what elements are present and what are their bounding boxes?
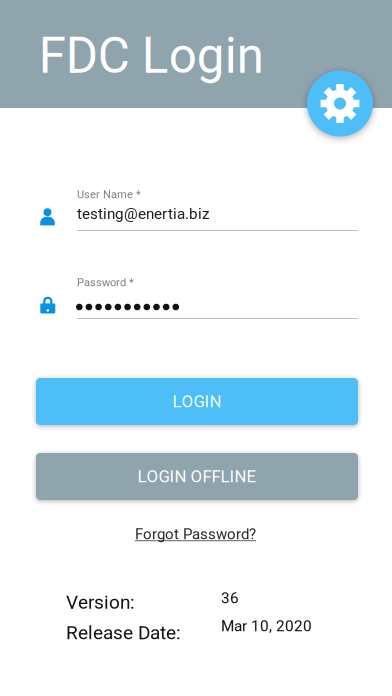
button[interactable]: LOGIN [36,378,358,425]
staticText: Version: [66,591,135,613]
staticText: User Name * [77,188,141,201]
staticText: Password * [77,276,134,289]
staticText: LOGIN [172,392,221,411]
button[interactable]: Forgot Password? [135,525,256,543]
staticText: Mar 10, 2020 [221,617,312,635]
staticText: Release Date: [66,621,181,644]
staticText: Forgot Password? [135,525,256,543]
button[interactable]: LOGIN OFFLINE [36,453,358,500]
staticText: testing@enertia.biz [77,205,210,223]
button[interactable]: User Name [36,186,358,232]
button[interactable]: Settings [307,70,373,136]
staticText: FDC Login [39,27,264,85]
button[interactable]: Password [36,274,358,320]
staticText: 36 [221,589,239,607]
staticText: LOGIN OFFLINE [137,467,256,486]
